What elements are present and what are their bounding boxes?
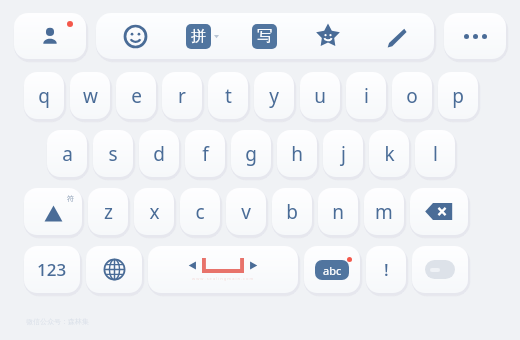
button[interactable]: abc mode: [304, 246, 360, 293]
button[interactable]: h: [277, 130, 317, 177]
button[interactable]: z: [88, 188, 128, 235]
staticText: w: [83, 83, 98, 109]
staticText: g: [245, 141, 257, 167]
staticText: z: [104, 199, 113, 225]
button[interactable]: 123: [24, 246, 80, 293]
button[interactable]: i: [346, 72, 386, 119]
button[interactable]: s: [93, 130, 133, 177]
button[interactable]: Space: [148, 246, 298, 293]
button[interactable]: f: [185, 130, 225, 177]
button[interactable]: p: [438, 72, 478, 119]
button[interactable]: Switch language: [86, 246, 142, 293]
button[interactable]: w: [70, 72, 110, 119]
staticText: c: [195, 199, 205, 225]
button[interactable]: Edit: [378, 19, 412, 53]
staticText: w w w . s e a l i n g m a i n . c o m: [192, 276, 254, 281]
button[interactable]: o: [392, 72, 432, 119]
staticText: 写: [257, 27, 272, 46]
staticText: m: [375, 199, 393, 225]
button[interactable]: j: [323, 130, 363, 177]
button[interactable]: d: [139, 130, 179, 177]
staticText: v: [241, 199, 251, 225]
staticText: l: [433, 141, 438, 167]
staticText: u: [314, 83, 326, 109]
button[interactable]: n: [318, 188, 358, 235]
staticText: 微信公众号：森林集: [26, 317, 89, 326]
staticText: e: [131, 83, 142, 109]
staticText: h: [291, 141, 303, 167]
staticText: n: [332, 199, 344, 225]
staticText: 123: [37, 258, 67, 281]
button[interactable]: More options: [444, 13, 506, 59]
staticText: q: [38, 83, 50, 109]
button[interactable]: g: [231, 130, 271, 177]
button[interactable]: q: [24, 72, 64, 119]
staticText: x: [149, 199, 160, 225]
staticText: y: [269, 83, 279, 109]
button[interactable]: k: [369, 130, 409, 177]
button[interactable]: v: [226, 188, 266, 235]
button[interactable]: Backspace: [410, 188, 468, 235]
staticText: o: [406, 83, 418, 109]
button[interactable]: Favorites: [311, 19, 345, 53]
button[interactable]: u: [300, 72, 340, 119]
button[interactable]: Handwriting: [252, 24, 277, 49]
button[interactable]: m: [364, 188, 404, 235]
button[interactable]: Shift / symbols: [24, 188, 82, 235]
button[interactable]: Toggle: [412, 246, 468, 293]
button[interactable]: x: [134, 188, 174, 235]
button[interactable]: e: [116, 72, 156, 119]
staticText: !: [384, 258, 389, 281]
staticText: 拼: [191, 27, 206, 46]
button[interactable]: !: [366, 246, 406, 293]
button[interactable]: Account: [14, 13, 86, 59]
staticText: 符: [67, 194, 74, 203]
staticText: j: [341, 141, 346, 167]
staticText: a: [62, 141, 73, 167]
staticText: b: [286, 199, 298, 225]
button[interactable]: c: [180, 188, 220, 235]
button[interactable]: a: [47, 130, 87, 177]
button[interactable]: t: [208, 72, 248, 119]
button[interactable]: y: [254, 72, 294, 119]
button[interactable]: l: [415, 130, 455, 177]
button[interactable]: r: [162, 72, 202, 119]
staticText: s: [108, 141, 118, 167]
staticText: d: [153, 141, 165, 167]
staticText: p: [452, 83, 464, 109]
button[interactable]: Emoji: [118, 19, 152, 53]
staticText: k: [384, 141, 395, 167]
staticText: t: [225, 83, 232, 109]
staticText: abc: [323, 263, 342, 278]
staticText: r: [178, 83, 186, 109]
staticText: i: [364, 83, 369, 109]
button[interactable]: Pinyin input: [186, 24, 219, 49]
staticText: f: [202, 141, 209, 167]
button[interactable]: b: [272, 188, 312, 235]
